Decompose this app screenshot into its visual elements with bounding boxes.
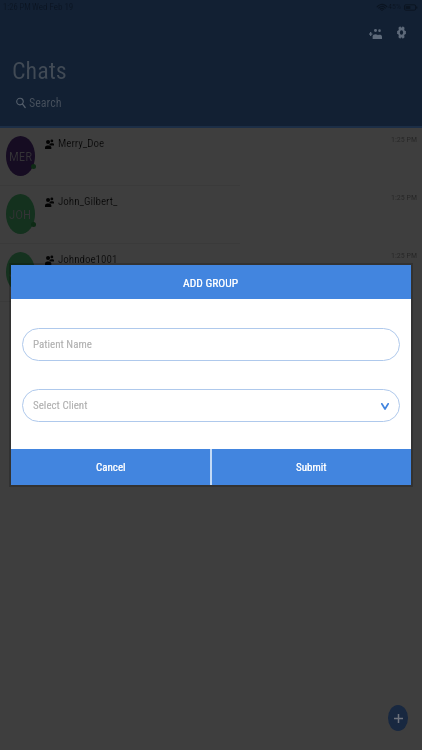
staticText: 1:25 PM [391,193,418,202]
button[interactable]: Submit [212,449,411,485]
button[interactable]: New chat [388,705,408,731]
staticText: MER [9,149,33,164]
staticText: JOH [9,265,32,280]
button[interactable]: JOH [0,186,422,244]
button[interactable]: Patient Name [22,328,400,361]
staticText: Search [29,96,62,110]
staticText: Select Client [33,399,88,412]
staticText: 1:25 PM [391,135,418,144]
staticText: Submit [296,461,327,474]
staticText: Johndoe1001 [58,253,118,266]
button[interactable]: Select Client [22,389,400,422]
staticText: Patient Name [33,338,92,351]
staticText: Cancel [96,461,126,474]
button[interactable]: Settings [391,21,413,43]
staticText: ADD GROUP [183,276,239,289]
staticText: Chats [12,57,67,85]
staticText: 45% [388,2,401,11]
staticText: 1:26 PM [3,2,31,12]
staticText: Merry_Doe [58,137,105,150]
staticText: 1:25 PM [391,251,418,260]
staticText: JOH [9,207,32,222]
button[interactable]: Add group [364,22,386,44]
staticText: John_Gilbert_ [58,195,118,208]
button[interactable]: Cancel [11,449,210,485]
staticText: Wed Feb 19 [32,2,74,13]
button[interactable]: JOH [0,244,422,302]
button[interactable]: MER [0,128,422,186]
button[interactable]: Search [10,92,130,114]
